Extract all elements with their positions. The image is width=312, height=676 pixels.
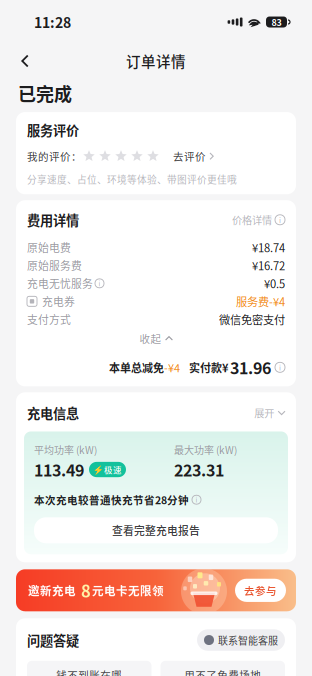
staticText: i xyxy=(279,362,281,372)
staticText: 费用详情 xyxy=(27,210,79,229)
staticText: 服务费-¥4 xyxy=(236,293,285,309)
staticText: 订单详情 xyxy=(126,50,186,71)
staticText: 去评价 xyxy=(173,149,206,164)
button[interactable]: 钱不到账在哪 xyxy=(27,661,151,676)
staticText: ¥18.74 xyxy=(252,239,285,255)
staticText: 价格详情 xyxy=(232,212,272,227)
staticText: 我的评价： xyxy=(27,149,82,164)
staticText: 去参与 xyxy=(244,583,277,598)
staticText: 展开 xyxy=(254,405,274,420)
staticText: 问题答疑 xyxy=(27,630,79,650)
button[interactable]: 返回 xyxy=(8,44,42,78)
staticText: 支付方式 xyxy=(27,311,71,327)
button[interactable]: 价格详情 xyxy=(232,212,285,227)
staticText: ¥0.5 xyxy=(264,275,285,291)
staticText: 元电卡无限领 xyxy=(92,582,164,599)
staticText: 31.96 xyxy=(230,356,271,379)
button[interactable]: 联系智能客服 xyxy=(197,629,285,651)
staticText: 平均功率 (kW) xyxy=(34,442,97,457)
staticText: 223.31 xyxy=(174,458,224,481)
staticText: 已完成 xyxy=(18,80,72,106)
button[interactable]: 展开 xyxy=(254,405,285,420)
staticText: ¥ xyxy=(222,359,228,375)
staticText: 邀新充电 xyxy=(28,582,76,599)
staticText: i xyxy=(98,279,100,288)
staticText: 83 xyxy=(271,15,281,28)
staticText: 查看完整充电报告 xyxy=(112,522,200,538)
staticText: 本单总减免 xyxy=(109,359,164,375)
staticText: ⚡极速 xyxy=(93,463,122,476)
staticText: 充电信息 xyxy=(27,403,79,422)
staticText: 微信免密支付 xyxy=(219,311,285,327)
staticText: 11:28 xyxy=(34,12,71,32)
staticText: 本次充电较普通快充节省28分钟 xyxy=(34,492,189,507)
staticText: 原始电费 xyxy=(27,239,71,255)
staticText: 联系智能客服 xyxy=(218,633,278,647)
staticText: 分享速度、占位、环境等体验、带图评价更佳哦 xyxy=(27,172,237,186)
button[interactable]: 我的评价： xyxy=(27,149,285,163)
button[interactable]: 查看完整充电报告 xyxy=(34,517,278,543)
staticText: ¥16.72 xyxy=(252,257,285,273)
staticText: 服务评价 xyxy=(27,120,79,139)
staticText: 收起 xyxy=(140,331,162,346)
staticText: i xyxy=(279,215,281,225)
staticText: 充电券 xyxy=(42,293,75,309)
staticText: 实付款 xyxy=(189,359,222,375)
button[interactable]: 收起 xyxy=(27,330,285,346)
staticText: -¥4 xyxy=(164,359,180,375)
button[interactable]: 邀新充电 xyxy=(16,569,296,611)
staticText: 最大功率 (kW) xyxy=(174,442,237,457)
staticText: 8 xyxy=(81,578,91,602)
button[interactable]: 用不了免费场地 xyxy=(160,661,285,676)
staticText: i xyxy=(195,495,197,504)
staticText: 充电无忧服务 xyxy=(27,275,93,291)
staticText: 钱不到账在哪 xyxy=(56,667,122,676)
staticText: 原始服务费 xyxy=(27,257,82,273)
staticText: 113.49 xyxy=(34,458,84,481)
staticText: 用不了免费场地 xyxy=(184,667,261,676)
